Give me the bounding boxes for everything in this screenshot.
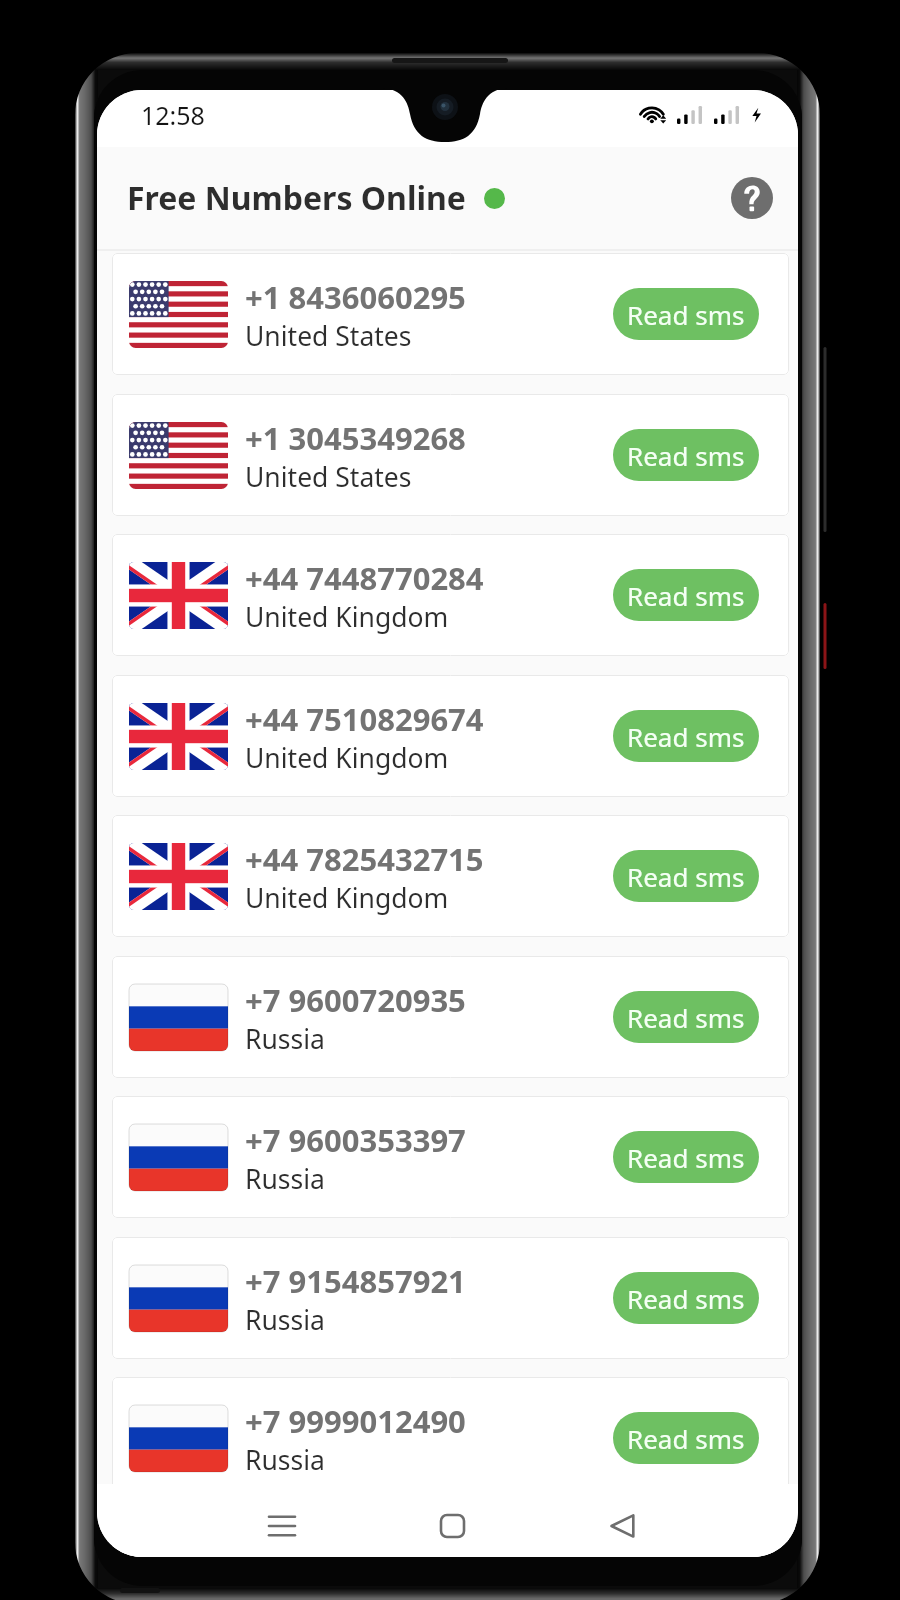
staticText: +1 8436060295 [245,276,466,318]
button[interactable]: Read sms [613,429,759,481]
staticText: Read sms [627,297,745,332]
staticText: +7 9600720935 [245,979,466,1021]
staticText: Russia [245,1442,325,1478]
button[interactable]: Read sms [613,710,759,762]
staticText: +7 9999012490 [245,1400,466,1442]
staticText: United Kingdom [245,740,449,776]
staticText: Read sms [627,1000,745,1035]
button[interactable]: +7 9000000000 [112,1518,789,1557]
staticText: Free Numbers Online [127,176,466,220]
button[interactable]: +1 8436060295 [112,253,789,375]
staticText: United Kingdom [245,880,449,916]
staticText: +44 7510829674 [245,698,484,740]
button[interactable]: +7 9999012490 [112,1377,789,1499]
button[interactable]: Read sms [613,569,759,621]
staticText: Russia [245,1021,325,1057]
button[interactable]: +1 3045349268 [112,394,789,516]
button[interactable]: +44 7448770284 [112,534,789,656]
button[interactable]: Read sms [613,1131,759,1183]
button[interactable]: Read sms [613,991,759,1043]
staticText: Russia [245,1161,325,1197]
button[interactable]: Back [594,1498,650,1554]
button[interactable]: Read sms [613,1412,759,1464]
staticText: Read sms [627,1421,745,1456]
staticText: Read sms [627,438,745,473]
button[interactable]: Read sms [613,288,759,340]
button[interactable]: Read sms [613,850,759,902]
staticText: +44 7448770284 [245,557,484,599]
staticText: United Kingdom [245,599,449,635]
staticText: Read sms [627,859,745,894]
button[interactable]: +44 7825432715 [112,815,789,937]
button[interactable]: Read sms [613,1272,759,1324]
staticText: Russia [245,1302,325,1338]
button[interactable]: Recent apps [254,1498,310,1554]
button[interactable]: +7 9600353397 [112,1096,789,1218]
button[interactable]: Help [728,174,776,222]
staticText: United States [245,318,412,354]
button[interactable]: +7 9154857921 [112,1237,789,1359]
staticText: Read sms [627,578,745,613]
staticText: +7 9154857921 [245,1260,466,1302]
staticText: +44 7825432715 [245,838,484,880]
button[interactable]: +7 9600720935 [112,956,789,1078]
staticText: +7 9600353397 [245,1119,466,1161]
staticText: Read sms [627,1281,745,1316]
staticText: 12:58 [141,98,205,132]
staticText: +1 3045349268 [245,417,466,459]
button[interactable]: Home [424,1498,480,1554]
button[interactable]: +44 7510829674 [112,675,789,797]
staticText: Read sms [627,1140,745,1175]
staticText: United States [245,459,412,495]
staticText: Read sms [627,719,745,754]
